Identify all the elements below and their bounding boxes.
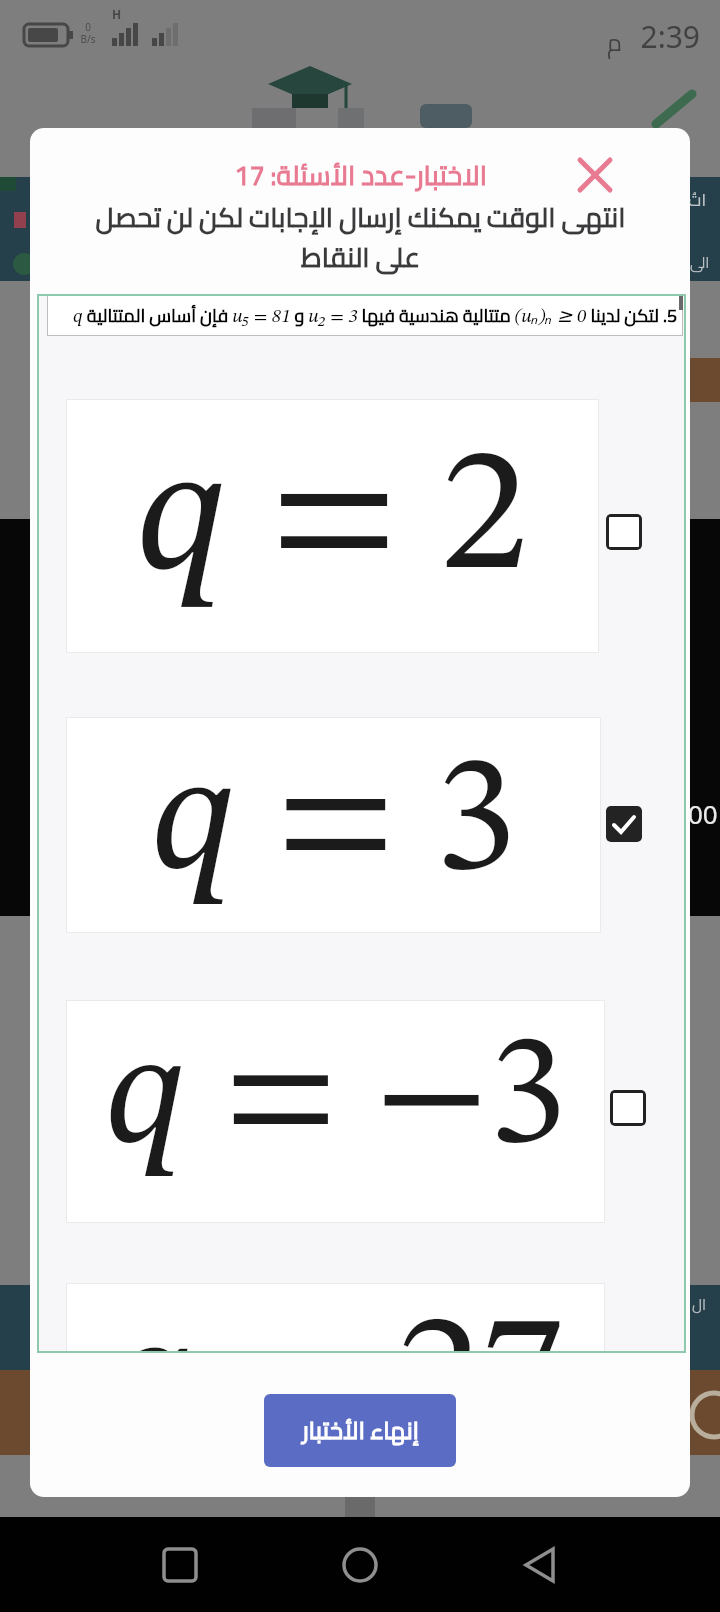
staticText: الاختبار-عدد الأسئلة: 17 xyxy=(234,150,487,196)
staticText: الى xyxy=(690,248,710,276)
button[interactable] xyxy=(578,158,612,192)
staticText: q = 27 xyxy=(106,1299,565,1353)
staticText: انتهى الوقت يمكنك إرسال الإجابات لكن لن … xyxy=(95,192,626,276)
staticText: ال xyxy=(692,1290,707,1318)
button[interactable] xyxy=(162,1547,198,1583)
staticText: إنهاء الأختبار xyxy=(302,1408,419,1453)
staticText: q = 2 xyxy=(136,431,529,609)
staticText: q = 3 xyxy=(151,742,517,908)
staticText: 2:39 xyxy=(0,16,700,57)
staticText: H xyxy=(112,6,122,22)
button[interactable] xyxy=(342,1547,378,1583)
staticText: 00 xyxy=(688,796,718,831)
button[interactable] xyxy=(610,1090,646,1126)
staticText: 5. لتكن لدينا ⁦(uₙ)ₙ ≥ 0⁩ متتالية هندسية… xyxy=(47,299,677,333)
staticText: اتُ xyxy=(688,184,707,216)
staticText: q = −3 xyxy=(105,1021,567,1179)
button[interactable]: q = 2 xyxy=(66,399,599,653)
button[interactable]: q = 27 xyxy=(66,1283,605,1353)
button[interactable] xyxy=(606,514,642,550)
button[interactable]: q = 3 xyxy=(66,717,601,933)
button[interactable] xyxy=(606,806,642,842)
staticText: م xyxy=(0,20,622,65)
staticText: 0 B/s xyxy=(80,20,96,46)
button[interactable]: إنهاء الأختبار xyxy=(264,1394,456,1467)
button[interactable]: q = −3 xyxy=(66,1000,605,1223)
button[interactable] xyxy=(522,1547,558,1583)
